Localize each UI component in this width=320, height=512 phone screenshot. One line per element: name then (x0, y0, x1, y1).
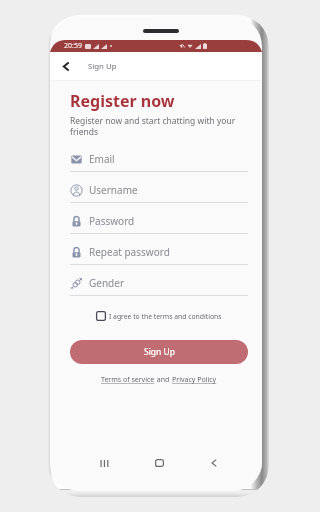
staticText: Sign Up (88, 61, 117, 72)
button[interactable]: Back (53, 52, 79, 81)
staticText: and (155, 375, 172, 385)
staticText: Register now (70, 90, 175, 112)
staticText: Gender (89, 276, 125, 290)
button[interactable]: Sign Up (70, 340, 248, 364)
staticText: Register now and start chatting with you… (70, 115, 236, 137)
button[interactable]: Recent apps (94, 453, 114, 473)
staticText: I agree to the terms and conditions (109, 312, 222, 321)
staticText: Password (89, 214, 135, 228)
button[interactable]: Home (149, 453, 169, 473)
button[interactable]: Repeat password (70, 240, 248, 271)
button[interactable]: Password (70, 209, 248, 240)
button[interactable]: Gender (70, 271, 248, 302)
button[interactable]: Privacy Policy (172, 375, 217, 385)
staticText: 20:59 (64, 41, 82, 51)
staticText: Username (89, 183, 138, 197)
staticText: Repeat password (89, 245, 170, 259)
button[interactable]: Terms of service (101, 375, 155, 385)
button[interactable]: Username (70, 178, 248, 209)
staticText: Sign Up (144, 346, 175, 358)
button[interactable]: I agree to the terms and conditions (70, 311, 248, 321)
button[interactable]: Back (204, 453, 224, 473)
staticText: Email (89, 152, 115, 166)
button[interactable]: Email (70, 147, 248, 178)
